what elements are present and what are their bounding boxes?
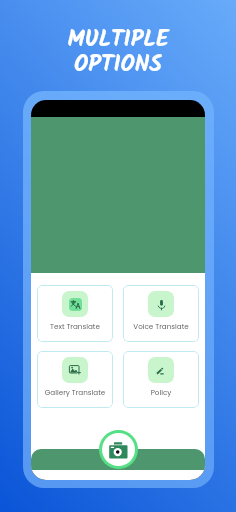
button[interactable]: Voice Translate xyxy=(123,285,199,342)
staticText: OPTIONS xyxy=(74,47,162,84)
button[interactable]: Navigation bar xyxy=(31,449,205,470)
staticText: Text Translate xyxy=(37,321,113,331)
staticText: MULTIPLE xyxy=(67,22,169,59)
staticText: Policy xyxy=(123,387,199,397)
button[interactable]: Text Translate xyxy=(37,285,113,342)
staticText: Voice Translate xyxy=(123,321,199,331)
staticText: Gallery Translate xyxy=(37,387,113,397)
button[interactable]: Policy xyxy=(123,351,199,408)
button[interactable]: Camera translate xyxy=(102,433,135,466)
button[interactable]: Gallery Translate xyxy=(37,351,113,408)
